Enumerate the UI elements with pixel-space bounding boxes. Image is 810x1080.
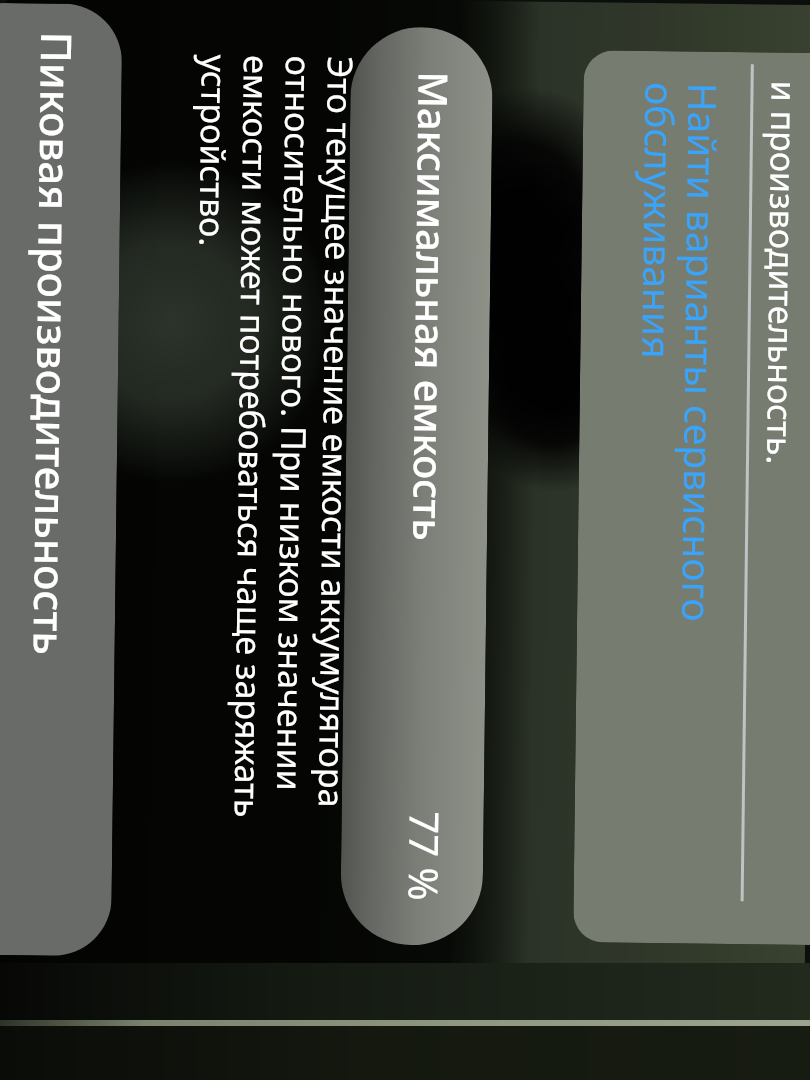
staticText: 77 % xyxy=(398,811,453,902)
staticText: Это текущее значение емкости аккумулятор… xyxy=(183,54,364,819)
button[interactable]: Найти варианты сервисного обслуживания xyxy=(573,50,751,944)
button[interactable]: Максимальная емкость xyxy=(340,26,493,946)
staticText: Максимальная емкость xyxy=(402,71,462,542)
button[interactable]: и производительность. xyxy=(743,52,810,945)
staticText: и производительность. xyxy=(757,80,808,465)
staticText: Пиковая производительность xyxy=(22,31,86,656)
button[interactable]: Пиковая производительность xyxy=(0,2,122,956)
staticText: Найти варианты сервисного обслуживания xyxy=(628,82,731,622)
